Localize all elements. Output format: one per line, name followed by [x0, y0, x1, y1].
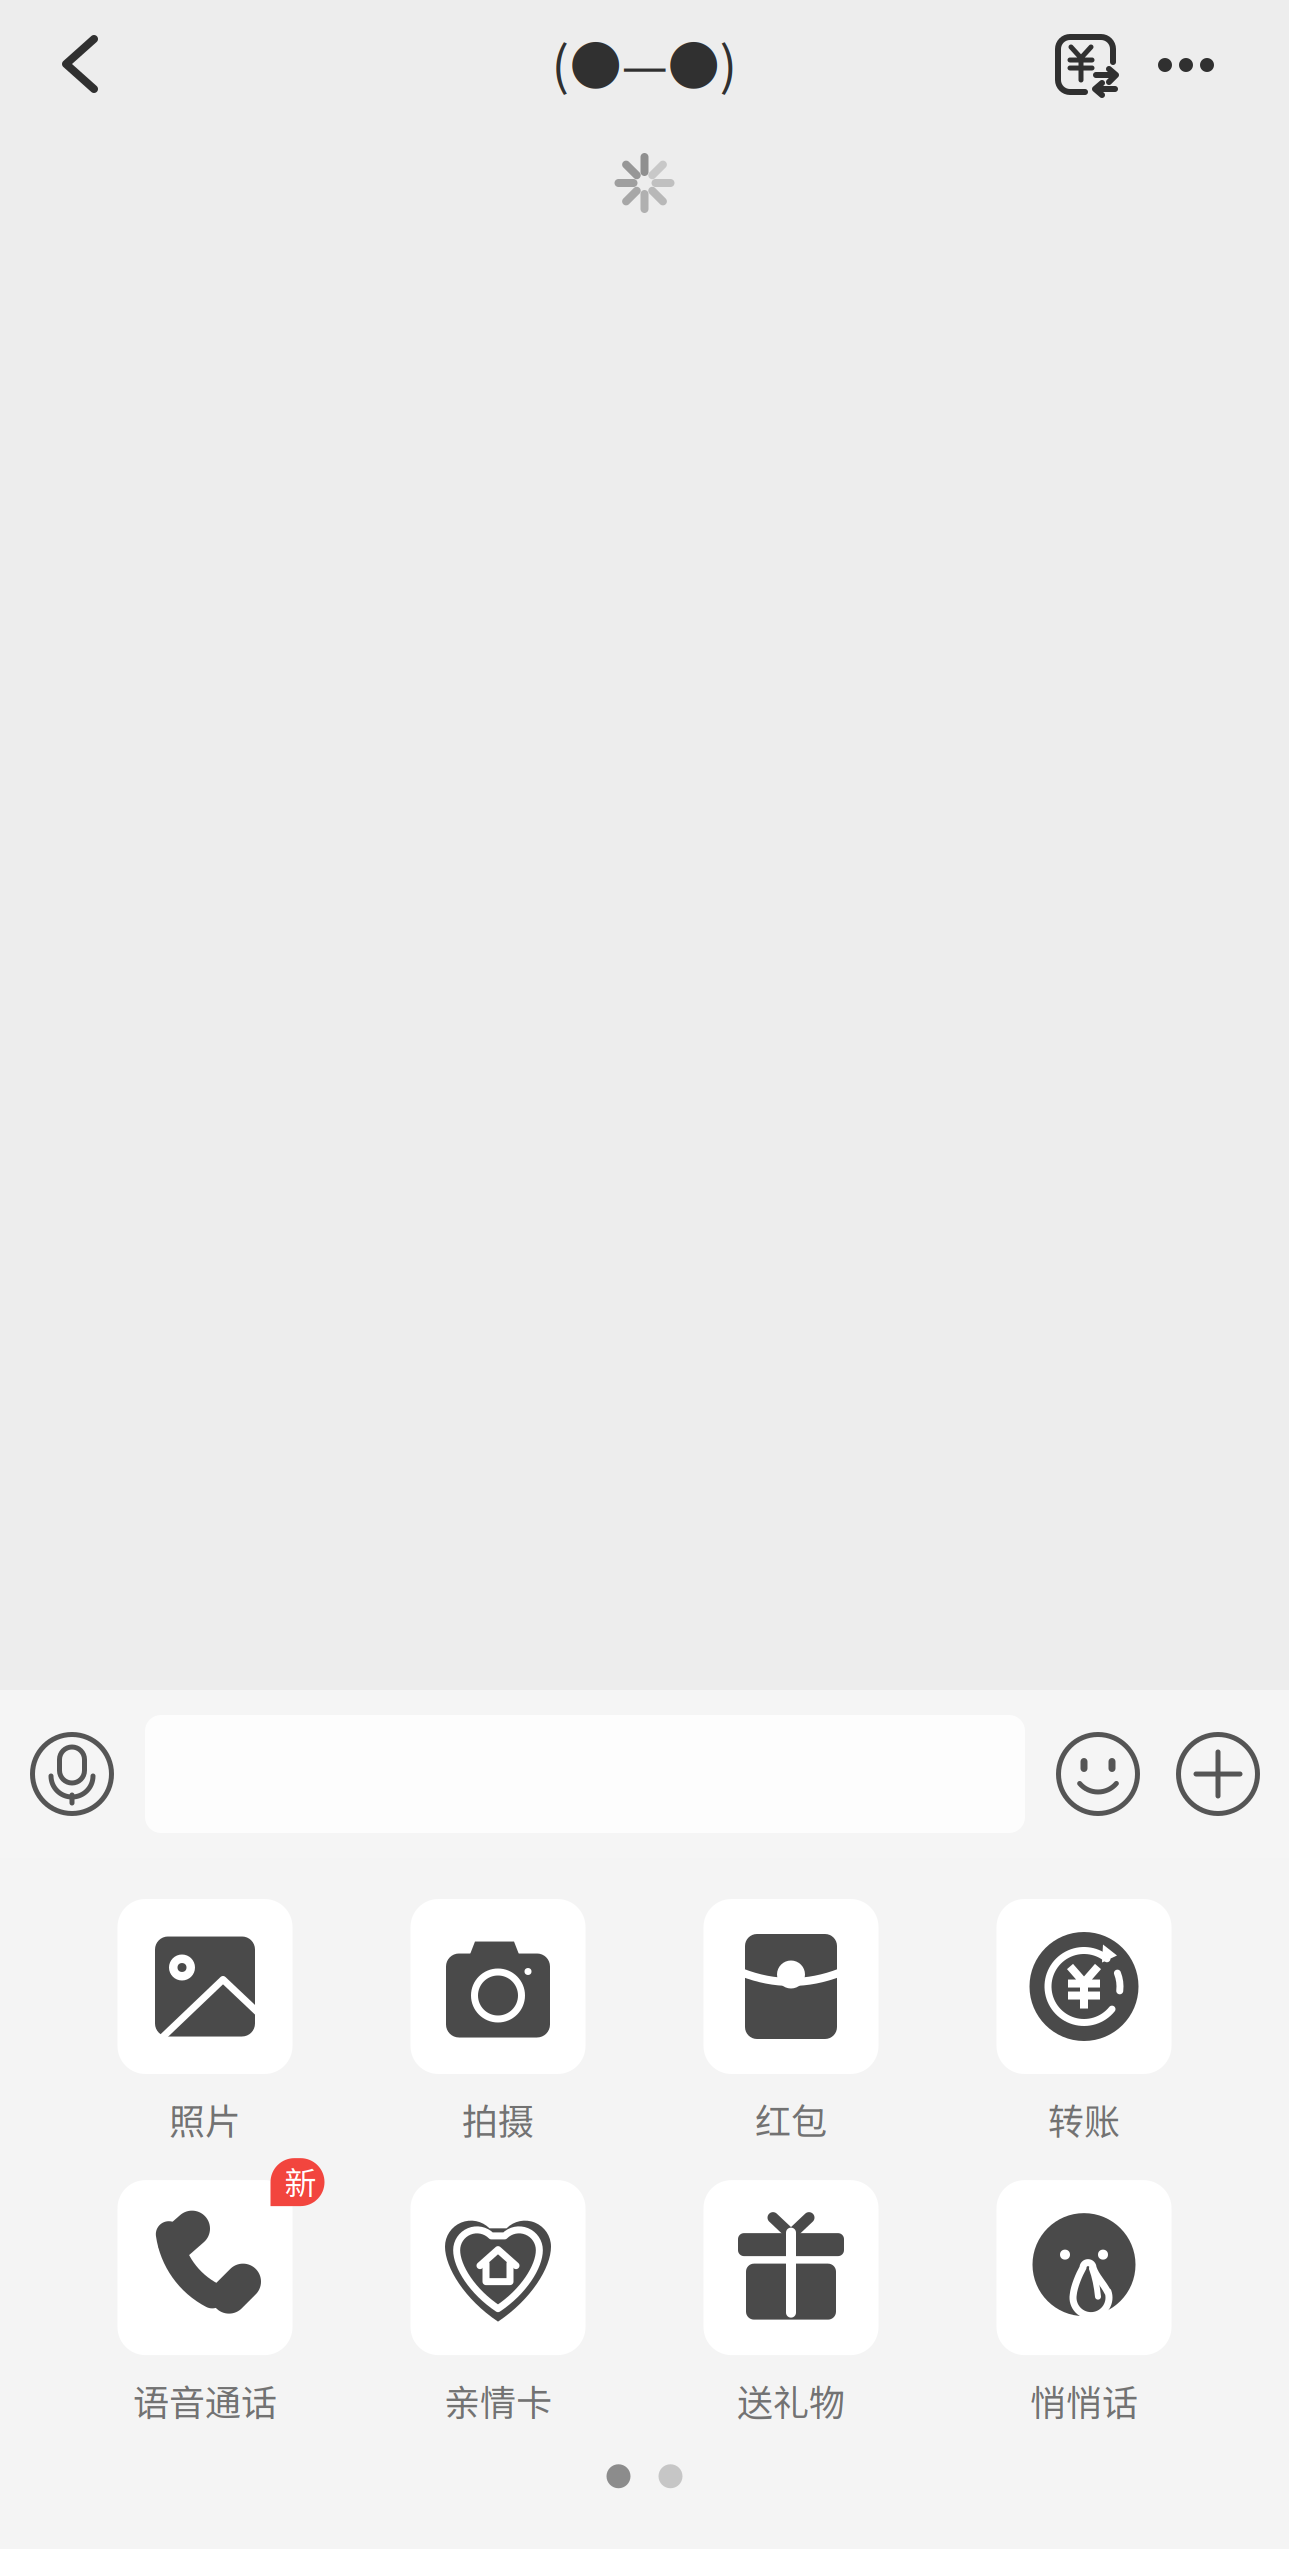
- button[interactable]: Voice message: [30, 1732, 114, 1816]
- button[interactable]: 新: [58, 2180, 351, 2426]
- button[interactable]: 悄悄话: [937, 2180, 1230, 2426]
- staticText: 照片: [169, 2093, 241, 2145]
- button[interactable]: 红包: [644, 1899, 937, 2145]
- staticText: 新: [284, 2158, 316, 2204]
- button[interactable]: 拍摄: [351, 1899, 644, 2145]
- staticText: 语音通话: [133, 2374, 277, 2426]
- button[interactable]: Back: [0, 0, 150, 130]
- staticText: 送礼物: [737, 2374, 845, 2426]
- button[interactable]: Emoji: [1056, 1732, 1140, 1816]
- staticText: (●—●): [551, 24, 737, 100]
- button[interactable]: 亲情卡: [351, 2180, 644, 2426]
- staticText: 红包: [755, 2093, 827, 2145]
- button[interactable]: 送礼物: [644, 2180, 937, 2426]
- staticText: 亲情卡: [444, 2374, 552, 2426]
- staticText: 悄悄话: [1030, 2374, 1138, 2426]
- button[interactable]: Transfer money: [1015, 0, 1131, 130]
- button[interactable]: More: [1131, 0, 1241, 130]
- staticText: 拍摄: [462, 2093, 534, 2145]
- button[interactable]: More actions: [1176, 1732, 1260, 1816]
- staticText: 转账: [1048, 2093, 1120, 2145]
- button[interactable]: 照片: [58, 1899, 351, 2145]
- button[interactable]: 转账: [937, 1899, 1230, 2145]
